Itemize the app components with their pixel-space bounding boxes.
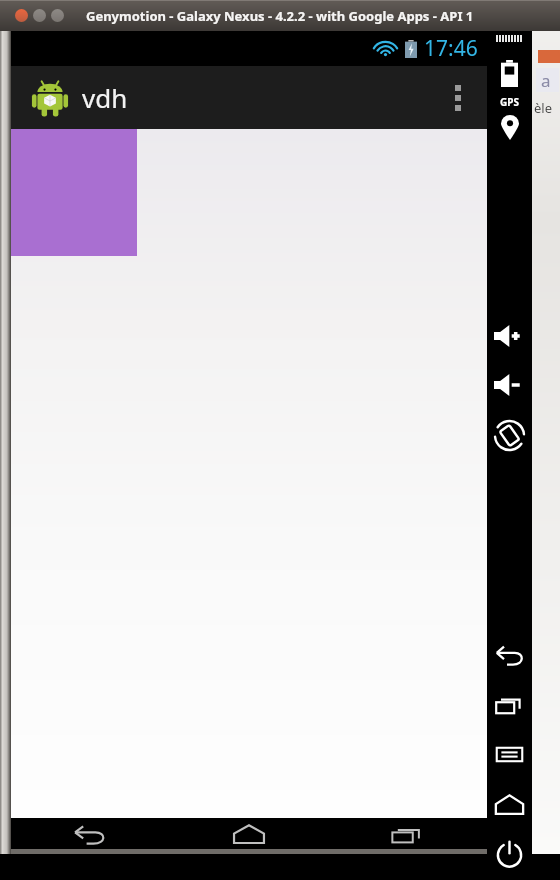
button[interactable]: Location	[487, 107, 532, 147]
staticText: a	[541, 69, 551, 92]
button[interactable]: Maximise	[51, 9, 64, 22]
button[interactable]: Volume down	[487, 365, 532, 405]
staticText: 17:46	[424, 34, 478, 63]
button[interactable]: Volume up	[487, 316, 532, 356]
button[interactable]: Menu	[487, 734, 532, 774]
button[interactable]: Home	[169, 818, 328, 849]
button[interactable]: Recents	[487, 684, 532, 724]
button[interactable]: Battery	[487, 53, 532, 93]
staticText: Genymotion - Galaxy Nexus - 4.2.2 - with…	[86, 7, 474, 25]
button[interactable]: More options	[429, 66, 487, 129]
button[interactable]: Recents	[328, 818, 487, 849]
button[interactable]: Minimise	[33, 9, 46, 22]
button[interactable]: Back	[487, 634, 532, 674]
staticText: GPS	[500, 95, 519, 109]
button[interactable]: Home	[487, 784, 532, 824]
button[interactable]: Back	[11, 818, 169, 849]
button[interactable]: Power	[487, 834, 532, 874]
staticText: vdh	[82, 80, 128, 115]
staticText: èle	[534, 99, 553, 117]
button[interactable]: Close	[15, 9, 28, 22]
button[interactable]: Rotate	[487, 415, 532, 455]
